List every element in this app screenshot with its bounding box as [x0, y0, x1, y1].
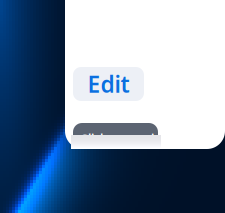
staticText: Edit	[87, 69, 129, 99]
button[interactable]	[73, 123, 158, 149]
button[interactable]: Edit	[73, 67, 144, 101]
staticText: Click to continue	[80, 131, 177, 147]
